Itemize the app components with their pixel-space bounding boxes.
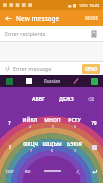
button[interactable]: ⌫ (80, 97, 103, 102)
staticText: МНОП (44, 117, 61, 124)
button[interactable]: ИЙКЛ (19, 111, 41, 135)
button[interactable]: Attach (3, 64, 12, 73)
staticText: MORE (85, 15, 99, 21)
staticText: ? (8, 120, 11, 127)
button[interactable]: Space (36, 159, 69, 183)
staticText: Enter recipients (5, 30, 46, 37)
staticText: 4 (29, 125, 31, 129)
staticText: 6 (74, 125, 76, 129)
staticText: RU (25, 169, 31, 174)
button[interactable]: Backspace (85, 135, 103, 159)
button[interactable]: ? (0, 111, 19, 135)
staticText: ⌫ (88, 97, 95, 102)
staticText: 9 (74, 149, 76, 153)
staticText: 8 (51, 149, 53, 153)
button[interactable]: Back (0, 10, 16, 26)
button[interactable]: MORE (81, 12, 103, 24)
button[interactable]: Russian (38, 75, 67, 87)
button[interactable]: Clipboard (19, 75, 38, 87)
button[interactable]: ./, (69, 159, 86, 183)
button[interactable]: SEND (82, 64, 100, 74)
staticText: ДЕЖЗ (59, 96, 74, 103)
staticText: Russian (44, 78, 61, 84)
button[interactable]: Settings (85, 75, 103, 87)
button[interactable]: ФХЦЧ (19, 135, 41, 159)
staticText: 7 (30, 149, 32, 153)
button[interactable]: ЬЭЮЯ (63, 135, 85, 159)
button[interactable]: ?9 (85, 111, 103, 135)
button[interactable]: Enter recipients (0, 26, 103, 41)
staticText: ФХЦЧ (23, 141, 38, 148)
staticText: ! (9, 144, 11, 151)
staticText: ШЩЪЫ (42, 141, 62, 148)
staticText: SEND (85, 66, 97, 72)
button[interactable]: ШЩЪЫ (41, 135, 63, 159)
button[interactable]: Enter (86, 159, 103, 183)
button[interactable]: Enter message (13, 65, 82, 72)
button[interactable]: РСТУ (63, 111, 85, 135)
button[interactable]: Theme (67, 75, 85, 87)
staticText: ЬЭЮЯ (67, 141, 82, 148)
staticText: ?9 (91, 120, 97, 127)
staticText: РСТУ (68, 117, 81, 124)
button[interactable]: ДЕЖЗ (52, 96, 80, 103)
button[interactable]: 123? (0, 159, 19, 183)
staticText: 100% (79, 3, 88, 8)
staticText: ИЙКЛ (22, 117, 38, 124)
staticText: New message (16, 14, 60, 23)
staticText: ./, (76, 169, 80, 174)
staticText: 5 (52, 125, 54, 129)
staticText: 123? (5, 169, 14, 174)
button[interactable]: RU (19, 159, 36, 183)
button[interactable]: АБВГ (24, 96, 52, 103)
button[interactable]: ! (0, 135, 19, 159)
button[interactable]: МНОП (41, 111, 63, 135)
staticText: 13:22 (89, 3, 100, 8)
button[interactable]: Add from contacts (90, 30, 98, 38)
staticText: АБВГ (32, 96, 45, 103)
button[interactable]: Emoji (0, 75, 19, 87)
staticText: Enter message (13, 65, 52, 72)
